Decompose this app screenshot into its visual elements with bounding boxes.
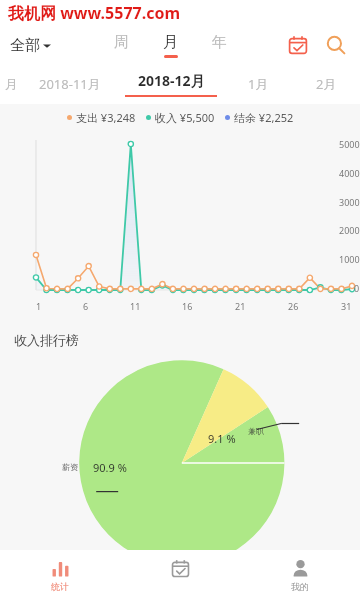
staticText: 6	[83, 300, 89, 312]
staticText: 全部	[10, 36, 40, 55]
staticText: 我机网 www.5577.com	[8, 2, 181, 24]
staticText: 2018-11月	[39, 75, 101, 93]
button[interactable]: 年	[206, 31, 233, 60]
button[interactable]: 2018-11月	[22, 75, 118, 93]
button[interactable]: 2月	[292, 75, 360, 93]
staticText: 收入 ¥5,500	[155, 110, 215, 125]
staticText: 4000	[339, 167, 360, 179]
staticText: 3000	[339, 196, 360, 208]
staticText: 2000	[339, 224, 360, 236]
staticText: 90.9 %	[93, 460, 127, 475]
staticText: 16	[182, 300, 193, 312]
staticText: 26	[288, 300, 299, 312]
staticText: 1000	[339, 253, 360, 265]
staticText: 9.1 %	[208, 431, 236, 446]
staticText: 年	[212, 33, 227, 52]
staticText: 5000	[339, 138, 360, 150]
staticText: 31	[341, 300, 352, 312]
staticText: 21	[235, 300, 246, 312]
staticText: 支出 ¥3,248	[76, 110, 136, 125]
button[interactable]: 月	[157, 31, 184, 60]
button[interactable]: 月	[0, 76, 22, 92]
button[interactable]: Calendar	[282, 29, 314, 61]
staticText: 薪资	[62, 462, 78, 472]
button[interactable]: 全部	[0, 32, 59, 59]
button[interactable]: Calendar	[120, 550, 240, 600]
button[interactable]: Search	[320, 29, 352, 61]
staticText: 0	[354, 282, 360, 294]
button[interactable]: 统计	[0, 550, 120, 600]
staticText: 结余 ¥2,252	[234, 110, 294, 125]
button[interactable]: 我的	[240, 550, 360, 600]
staticText: 1月	[248, 75, 269, 93]
staticText: 我的	[291, 581, 309, 592]
button[interactable]: 周	[108, 31, 135, 60]
staticText: 月	[5, 76, 18, 92]
staticText: 2月	[316, 75, 337, 93]
staticText: 11	[130, 300, 141, 312]
button[interactable]: 2018-12月	[118, 71, 224, 97]
staticText: 兼职	[248, 426, 264, 436]
staticText: 月	[163, 33, 178, 52]
staticText: 统计	[51, 581, 69, 592]
staticText: 2018-12月	[138, 71, 205, 90]
staticText: 周	[114, 33, 129, 52]
staticText: 1	[36, 300, 42, 312]
button[interactable]: 1月	[224, 75, 292, 93]
staticText: 收入排行榜	[14, 332, 79, 348]
